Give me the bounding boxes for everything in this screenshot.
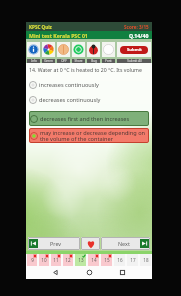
staticText: Prev (50, 240, 62, 247)
staticText: OFF (61, 59, 67, 63)
button[interactable]: decreases continuously (29, 92, 149, 108)
button[interactable]: Info (26, 42, 41, 63)
button[interactable]: Font (101, 42, 116, 63)
staticText: Mini test Kerala PSC 01 (29, 32, 88, 39)
staticText: Score: 3/15 (124, 24, 149, 30)
button[interactable]: 9 (27, 254, 37, 266)
button[interactable]: decreases first and then increases (29, 111, 149, 126)
button[interactable]: Share (71, 42, 86, 63)
staticText: Info (31, 59, 37, 63)
button[interactable]: OFF (56, 42, 71, 63)
staticText: Q.14/40 (129, 32, 149, 39)
button[interactable]: Favourite (81, 237, 100, 250)
staticText: increases continuously (39, 81, 99, 89)
button[interactable]: 17 (127, 254, 138, 266)
staticText: 14 (91, 257, 97, 263)
staticText: decreases continuously (39, 96, 101, 104)
button[interactable]: Next (101, 237, 150, 250)
staticText: 16 (117, 257, 123, 263)
button[interactable]: Home (85, 268, 94, 277)
button[interactable]: Prev (28, 237, 80, 250)
staticText: Submit All (127, 59, 142, 63)
button[interactable]: 10 (39, 254, 49, 266)
button[interactable]: 12 (63, 254, 73, 266)
button[interactable]: Green (41, 42, 56, 63)
staticText: 18 (143, 257, 149, 263)
button[interactable]: 15 (101, 254, 112, 266)
button[interactable]: increases continuously (29, 77, 149, 92)
staticText: 17 (130, 257, 136, 263)
staticText: 13 (78, 257, 84, 263)
button[interactable]: 11 (51, 254, 61, 266)
staticText: Bug (91, 59, 97, 63)
staticText: KPSC Quiz (29, 24, 52, 30)
staticText: 14. Water at 0 °C is heated to 20 °C. It… (29, 66, 142, 73)
staticText: 9 (31, 257, 34, 263)
staticText: 12 (65, 257, 71, 263)
staticText: 11 (53, 257, 59, 263)
staticText: 15 (104, 257, 110, 263)
button[interactable]: Submit All (116, 42, 152, 63)
button[interactable]: Submit (120, 46, 148, 54)
staticText: Share (74, 59, 83, 63)
staticText: Green (44, 59, 53, 63)
button[interactable]: may increase or decrease depending on th… (29, 128, 149, 143)
staticText: Submit (127, 47, 142, 53)
button[interactable]: 18 (140, 254, 151, 266)
button[interactable]: Recents (118, 268, 127, 277)
button[interactable]: Back (51, 268, 60, 277)
button[interactable]: 16 (114, 254, 125, 266)
button[interactable]: 14 (88, 254, 99, 266)
button[interactable]: 13 (75, 254, 86, 266)
staticText: decreases first and then increases (40, 115, 130, 123)
staticText: may increase or decrease depending on th… (40, 129, 148, 143)
staticText: Font (105, 59, 112, 63)
staticText: Next (118, 240, 130, 247)
staticText: 10 (41, 257, 47, 263)
button[interactable]: Bug (86, 42, 101, 63)
